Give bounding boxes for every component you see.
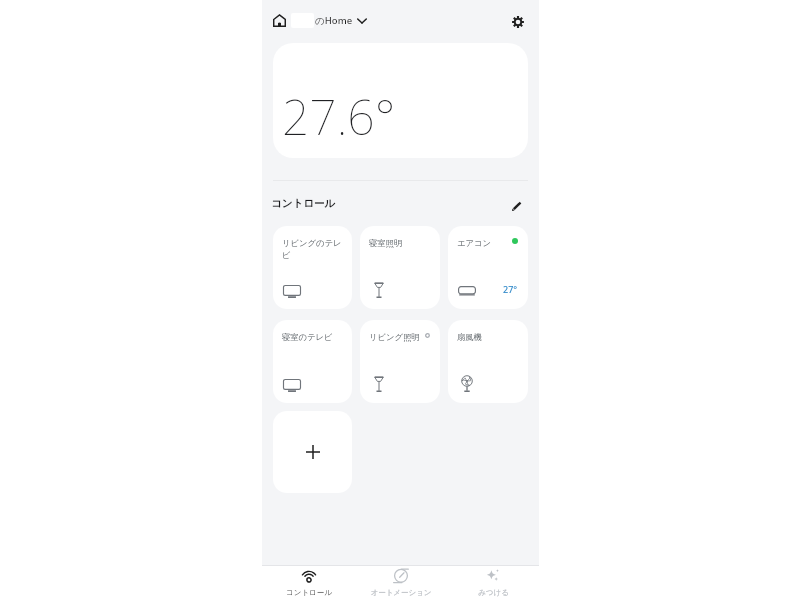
staticText: みつける	[478, 588, 509, 597]
button[interactable]: Add device	[273, 411, 352, 493]
staticText: リビング照明	[369, 332, 420, 342]
staticText: エアコン	[457, 238, 510, 248]
staticText: リビングのテレビ	[282, 238, 342, 261]
staticText: 寝室照明	[369, 238, 403, 248]
staticText: 27.6°	[282, 84, 396, 149]
staticText: 扇風機	[457, 332, 482, 342]
button[interactable]: オートメーション	[355, 566, 447, 600]
button[interactable]: Settings	[507, 11, 529, 33]
button[interactable]: 27.6°	[273, 43, 528, 158]
button[interactable]: 扇風機	[448, 320, 528, 403]
button[interactable]: Home	[273, 13, 367, 28]
staticText: 27°	[503, 283, 518, 295]
button[interactable]: リビング照明	[360, 320, 440, 403]
staticText: コントロール	[271, 197, 336, 210]
button[interactable]: 寝室照明	[360, 226, 440, 309]
staticText: コントロール	[286, 588, 332, 597]
staticText: のHome	[315, 14, 353, 27]
other: Home	[273, 14, 286, 27]
button[interactable]: みつける	[447, 566, 539, 600]
staticText: オートメーション	[370, 588, 432, 597]
button[interactable]: リビングのテレビ	[273, 226, 352, 309]
button[interactable]: 寝室のテレビ	[273, 320, 352, 403]
button[interactable]: コントロール	[262, 566, 355, 600]
button[interactable]: エアコン	[448, 226, 528, 309]
staticText: 寝室のテレビ	[282, 332, 333, 342]
button[interactable]: Edit	[507, 197, 525, 215]
